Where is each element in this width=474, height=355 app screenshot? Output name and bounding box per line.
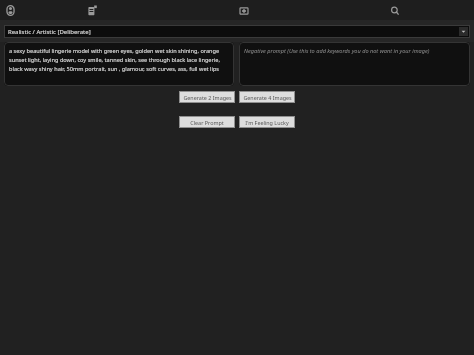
- staticText: Generate 2 Images: [183, 94, 232, 101]
- staticText: I'm Feeling Lucky: [245, 119, 289, 126]
- staticText: Clear Prompt: [190, 119, 224, 126]
- button[interactable]: Account: [1, 1, 20, 20]
- button[interactable]: I'm Feeling Lucky: [239, 116, 295, 128]
- button[interactable]: Generate 4 Images: [239, 91, 295, 103]
- button[interactable]: Generate 2 Images: [179, 91, 235, 103]
- staticText: Negative prompt (Use this to add keyword…: [244, 47, 430, 55]
- button[interactable]: Negative prompt (Use this to add keyword…: [239, 42, 470, 86]
- button[interactable]: Gallery: [234, 1, 253, 20]
- button[interactable]: a sexy beautiful lingerie model with gre…: [4, 42, 234, 86]
- button[interactable]: New document: [82, 1, 101, 20]
- button[interactable]: Realistic / Artistic [Deliberate]: [4, 25, 470, 38]
- button[interactable]: Clear Prompt: [179, 116, 235, 128]
- staticText: Realistic / Artistic [Deliberate]: [8, 28, 91, 36]
- staticText: a sexy beautiful lingerie model with gre…: [9, 47, 229, 72]
- button[interactable]: Search: [385, 1, 404, 20]
- staticText: Generate 4 Images: [243, 94, 292, 101]
